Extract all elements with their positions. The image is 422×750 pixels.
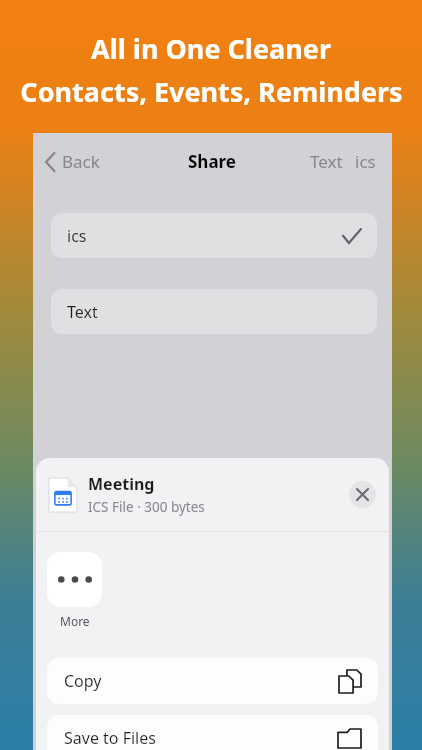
staticText: More [60, 613, 90, 629]
staticText: ics [355, 150, 376, 173]
staticText: Text [310, 150, 343, 173]
button[interactable]: Save to Files [47, 715, 378, 750]
button[interactable]: Copy [47, 658, 378, 704]
staticText: Copy [64, 670, 102, 692]
button[interactable]: More [47, 552, 102, 629]
staticText: ICS File · 300 bytes [88, 498, 205, 516]
button[interactable]: Text [51, 289, 377, 334]
staticText: All in One Cleaner [91, 30, 331, 67]
button[interactable]: Text [306, 146, 347, 177]
button[interactable]: Back [39, 144, 106, 179]
staticText: Meeting [88, 473, 155, 495]
button[interactable]: Close [349, 481, 376, 508]
button[interactable]: ics [51, 213, 377, 258]
staticText: Text [67, 301, 98, 323]
button[interactable]: ics [351, 146, 380, 177]
staticText: Back [62, 150, 100, 173]
staticText: ics [67, 225, 87, 247]
staticText: Contacts, Events, Reminders [20, 73, 403, 110]
staticText: Save to Files [64, 727, 156, 749]
staticText: Share [188, 150, 237, 173]
